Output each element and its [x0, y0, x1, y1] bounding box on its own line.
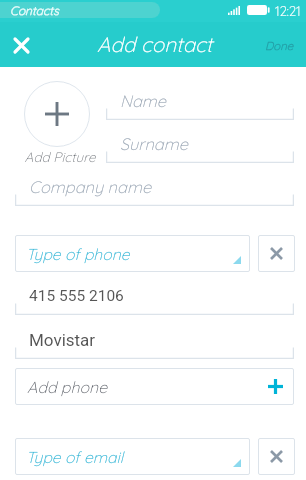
staticText: Surname	[120, 133, 188, 154]
staticText: Done	[265, 38, 294, 52]
staticText: Add phone	[27, 377, 108, 397]
button[interactable]: 415 555 2106	[15, 285, 294, 315]
button[interactable]: Add phone	[15, 368, 294, 405]
staticText: Movistar	[29, 330, 96, 350]
staticText: 415 555 2106	[29, 287, 124, 305]
button[interactable]: Remove	[258, 438, 295, 475]
staticText: Name	[120, 90, 167, 111]
button[interactable]: Done	[259, 32, 300, 58]
button[interactable]: Name	[106, 90, 294, 120]
staticText: Add Picture	[20, 148, 100, 165]
staticText: Type of phone	[26, 244, 130, 264]
button[interactable]: Close	[5, 29, 37, 61]
staticText: Company name	[29, 176, 152, 197]
button[interactable]: Add Picture	[24, 81, 90, 147]
staticText: Add contact	[97, 31, 213, 57]
button[interactable]: Company name	[15, 176, 294, 206]
button[interactable]: Surname	[106, 133, 294, 163]
button[interactable]: Type of phone	[15, 235, 250, 272]
button[interactable]: Movistar	[15, 329, 294, 359]
staticText: Type of email	[26, 447, 124, 467]
button[interactable]: Type of email	[15, 438, 250, 475]
staticText: 12:21	[275, 3, 301, 19]
staticText: Contacts	[10, 3, 59, 18]
button[interactable]: Remove	[258, 235, 295, 272]
